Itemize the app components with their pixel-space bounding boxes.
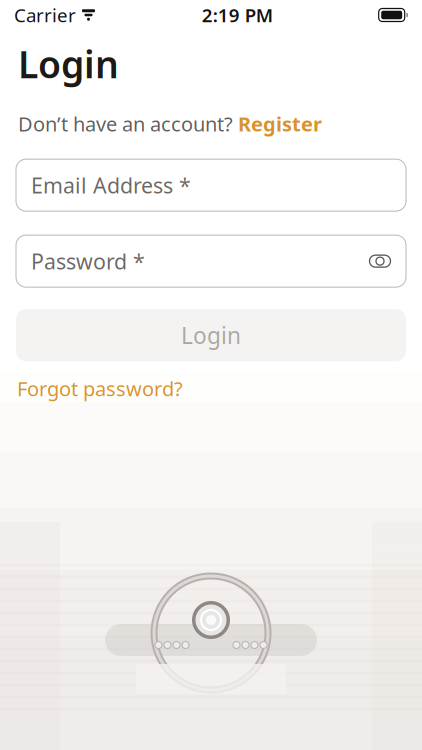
staticText: Forgot password? — [17, 375, 183, 402]
button[interactable]: Forgot password? — [17, 371, 183, 406]
staticText: Login — [181, 320, 241, 350]
staticText: Carrier — [14, 3, 76, 27]
staticText: Don’t have an account? — [18, 111, 233, 137]
button[interactable]: Password * — [16, 235, 406, 287]
staticText: Email Address * — [31, 171, 191, 199]
button[interactable]: Login — [16, 309, 406, 361]
button[interactable]: Register — [238, 111, 322, 137]
staticText: Password * — [31, 247, 145, 275]
staticText: Login — [18, 39, 119, 89]
button[interactable]: Email Address * — [16, 159, 406, 211]
staticText: 2:19 PM — [202, 3, 273, 27]
staticText: Register — [238, 111, 322, 137]
